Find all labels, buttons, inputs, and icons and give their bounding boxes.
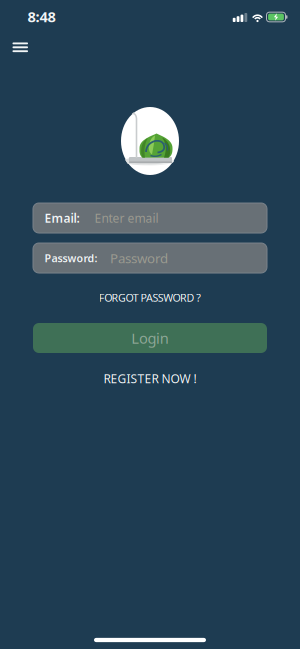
- staticText: Email:: [44, 210, 79, 226]
- staticText: Password: [110, 249, 168, 267]
- staticText: REGISTER NOW !: [103, 370, 196, 386]
- staticText: Login: [131, 328, 169, 348]
- staticText: Password:: [44, 251, 97, 265]
- staticText: 8:48: [27, 7, 55, 26]
- button[interactable]: Login: [33, 323, 267, 353]
- staticText: FORGOT PASSWORD ?: [99, 290, 201, 305]
- button[interactable]: REGISTER NOW !: [97, 364, 202, 392]
- textField[interactable]: Enter email: [94, 210, 267, 226]
- textField[interactable]: Password: [110, 249, 267, 267]
- staticText: Enter email: [94, 210, 158, 226]
- button[interactable]: Menu: [8, 38, 32, 56]
- button[interactable]: FORGOT PASSWORD ?: [93, 284, 207, 311]
